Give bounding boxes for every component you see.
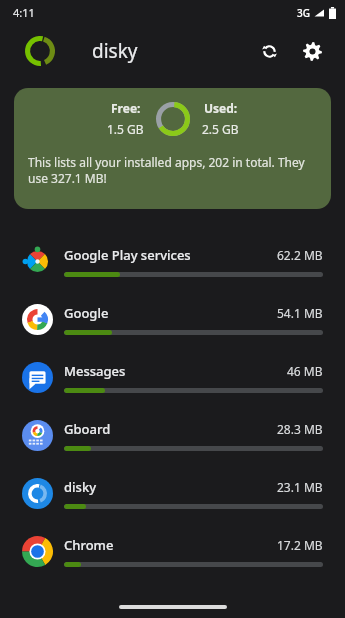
staticText: 1.5 GB (107, 121, 144, 137)
button[interactable]: Google (0, 290, 345, 348)
staticText: 46 MB (287, 363, 323, 379)
button[interactable]: Google Play services (0, 232, 345, 290)
staticText: Google Play services (64, 246, 277, 264)
button[interactable]: Free: (14, 88, 331, 209)
staticText: Google (64, 304, 277, 322)
staticText: 17.2 MB (277, 537, 323, 553)
button[interactable]: Refresh (249, 31, 289, 71)
button[interactable]: Gboard (0, 406, 345, 464)
staticText: disky (64, 478, 277, 496)
button[interactable]: disky (0, 464, 345, 522)
staticText: 4:11 (13, 5, 35, 20)
button[interactable]: Chrome (0, 522, 345, 580)
button[interactable]: Messages (0, 348, 345, 406)
staticText: 28.3 MB (277, 421, 323, 437)
staticText: Messages (64, 362, 287, 380)
staticText: 62.2 MB (277, 247, 323, 263)
button[interactable]: Settings (292, 31, 332, 71)
staticText: 54.1 MB (277, 305, 323, 321)
staticText: Gboard (64, 420, 277, 438)
staticText: This lists all your installed apps, 202 … (28, 154, 317, 187)
staticText: Used: (204, 100, 238, 116)
staticText: Free: (111, 100, 141, 116)
staticText: 2.5 GB (202, 121, 239, 137)
staticText: 3G (297, 6, 310, 20)
staticText: disky (92, 38, 138, 64)
staticText: 23.1 MB (277, 479, 323, 495)
staticText: Chrome (64, 536, 277, 554)
